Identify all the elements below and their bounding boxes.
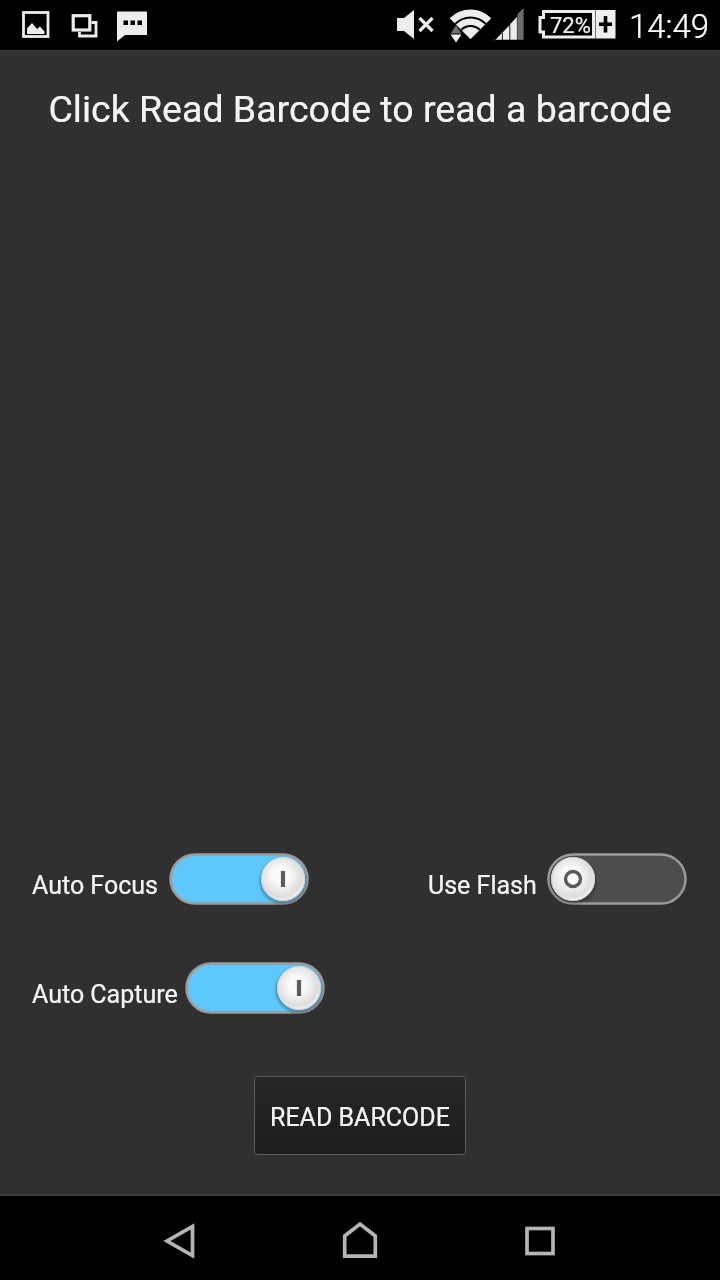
staticText: Auto Focus xyxy=(32,871,158,900)
button[interactable]: Auto Capture toggle xyxy=(185,962,325,1014)
staticText: READ BARCODE xyxy=(270,1103,450,1132)
button[interactable]: Back xyxy=(140,1201,220,1280)
staticText: Auto Capture xyxy=(32,980,178,1009)
button[interactable]: Recent apps xyxy=(500,1201,580,1280)
button[interactable]: READ BARCODE xyxy=(254,1076,466,1155)
button[interactable]: Home xyxy=(320,1201,400,1280)
button[interactable]: Auto Focus toggle xyxy=(169,853,309,905)
button[interactable]: Use Flash toggle xyxy=(547,853,687,905)
staticText: 14:49 xyxy=(629,7,710,46)
staticText: 72% xyxy=(550,13,591,39)
staticText: Use Flash xyxy=(428,871,537,900)
staticText: Click Read Barcode to read a barcode xyxy=(0,87,720,131)
